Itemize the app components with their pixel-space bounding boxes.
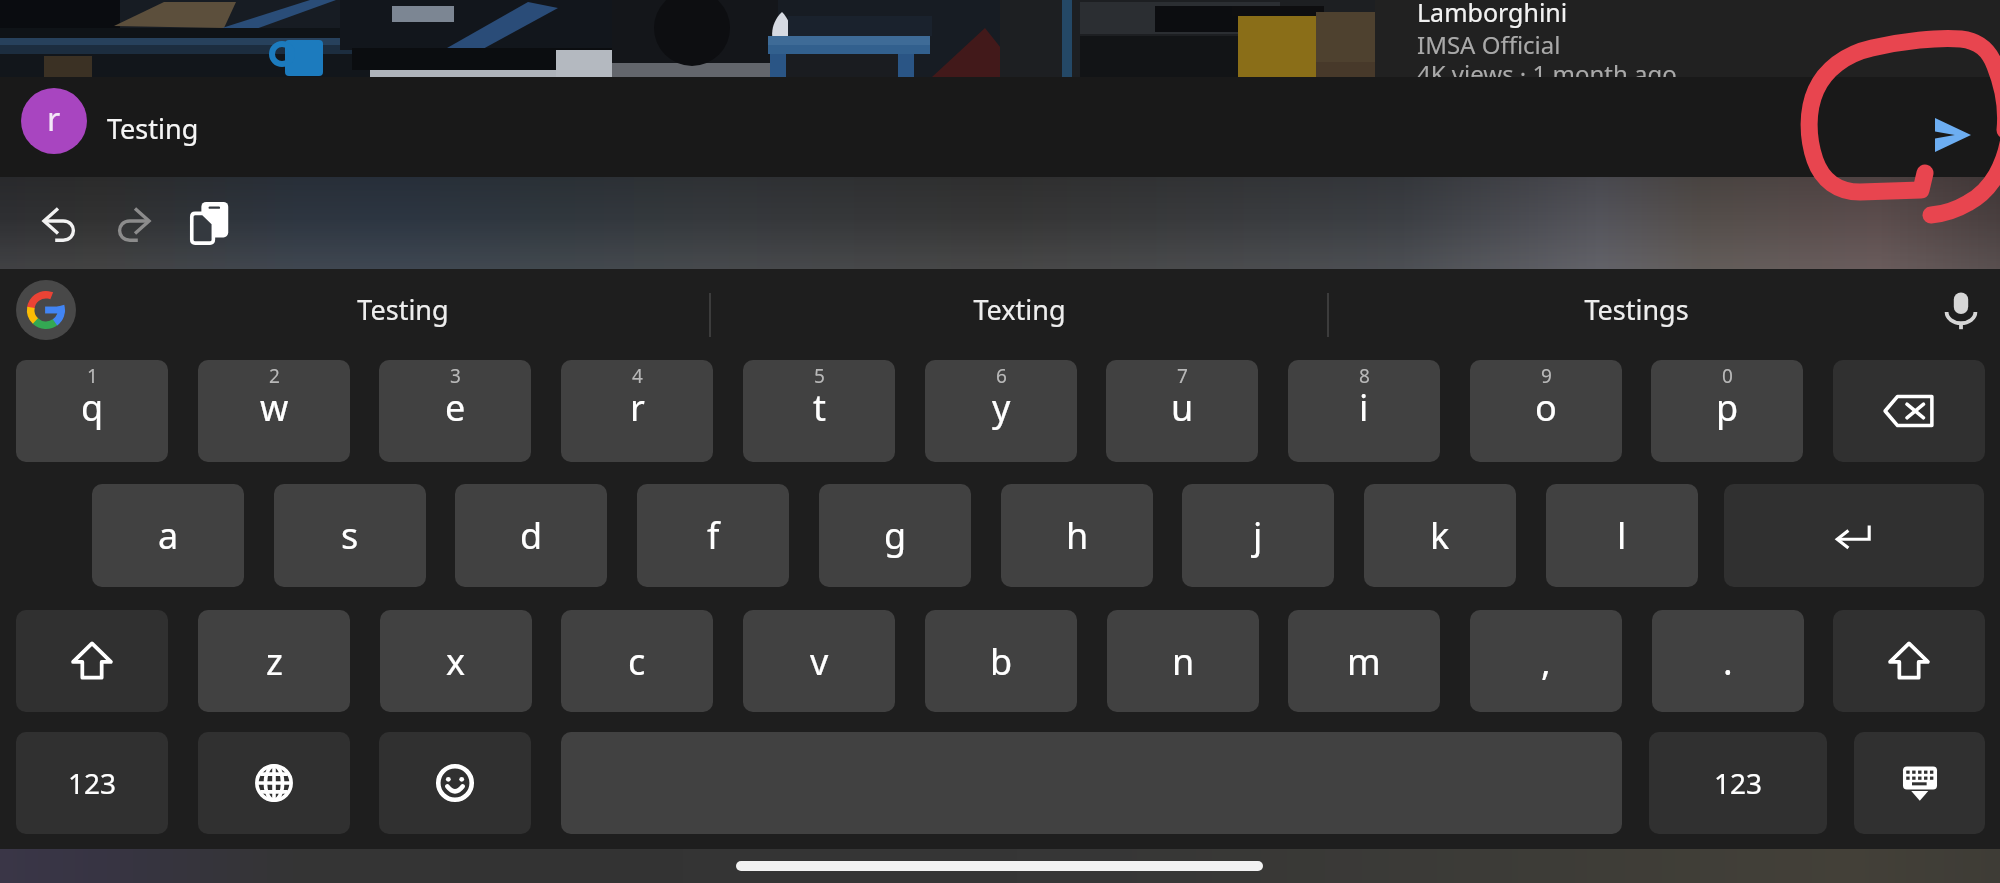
button[interactable]: z	[198, 610, 350, 712]
staticText: e	[445, 383, 466, 432]
staticText: 9	[1541, 363, 1552, 389]
button[interactable]: 123	[16, 732, 168, 834]
staticText: b	[990, 637, 1013, 686]
button[interactable]: Shift	[1833, 610, 1985, 712]
staticText: 5	[814, 363, 825, 389]
staticText: 8	[1359, 363, 1370, 389]
staticText: u	[1171, 383, 1194, 432]
button[interactable]: Clipboard	[176, 189, 244, 257]
staticText: 4K views · 1 month ago	[1417, 57, 1677, 90]
button[interactable]: n	[1107, 610, 1259, 712]
button[interactable]: 0	[1651, 360, 1803, 462]
staticText: m	[1347, 637, 1381, 686]
button[interactable]: 9	[1470, 360, 1622, 462]
staticText: 1	[87, 363, 98, 389]
staticText: 0	[1722, 363, 1733, 389]
button[interactable]: Backspace	[1833, 360, 1985, 462]
staticText: IMSA Official	[1417, 28, 1561, 61]
button[interactable]: s	[274, 484, 426, 587]
button[interactable]: 3	[379, 360, 531, 462]
button[interactable]: Change language	[198, 732, 350, 834]
button[interactable]: j	[1182, 484, 1334, 587]
staticText: o	[1535, 383, 1557, 432]
staticText: f	[707, 511, 720, 560]
staticText: j	[1253, 511, 1263, 560]
staticText: 4	[632, 363, 643, 389]
button[interactable]: Shift	[16, 610, 168, 712]
button[interactable]: Emoji	[379, 732, 531, 834]
staticText: r	[47, 97, 61, 141]
button[interactable]: 5	[743, 360, 895, 462]
button[interactable]: Testings	[1328, 269, 1945, 360]
button[interactable]: 123	[1649, 732, 1827, 834]
staticText: c	[628, 637, 646, 686]
button[interactable]: x	[380, 610, 532, 712]
button[interactable]: k	[1364, 484, 1516, 587]
button[interactable]: ,	[1470, 610, 1622, 712]
staticText: 2	[269, 363, 280, 389]
staticText: g	[884, 511, 907, 560]
button[interactable]: g	[819, 484, 971, 587]
staticText: Lamborghini	[1417, 0, 1568, 29]
staticText: Testings	[1584, 291, 1689, 328]
button[interactable]: 2	[198, 360, 350, 462]
button[interactable]: r	[0, 77, 2000, 177]
staticText: .	[1723, 637, 1733, 686]
staticText: s	[341, 511, 359, 560]
staticText: x	[446, 637, 466, 686]
button[interactable]: b	[925, 610, 1077, 712]
staticText: a	[158, 511, 179, 560]
staticText: 123	[68, 764, 117, 802]
button[interactable]: m	[1288, 610, 1440, 712]
button[interactable]: f	[637, 484, 789, 587]
button[interactable]: 7	[1106, 360, 1258, 462]
staticText: i	[1359, 383, 1369, 432]
staticText: ,	[1541, 637, 1551, 686]
staticText: z	[266, 637, 283, 686]
button[interactable]: 8	[1288, 360, 1440, 462]
button[interactable]: v	[743, 610, 895, 712]
button[interactable]: 1	[16, 360, 168, 462]
staticText: q	[81, 383, 104, 432]
button[interactable]: h	[1001, 484, 1153, 587]
button[interactable]: Undo	[26, 189, 94, 257]
staticText: l	[1617, 511, 1627, 560]
staticText: 3	[450, 363, 461, 389]
button[interactable]: Redo	[99, 189, 167, 257]
button[interactable]: Texting	[711, 269, 1328, 360]
button[interactable]: .	[1652, 610, 1804, 712]
staticText: p	[1716, 383, 1739, 432]
staticText: n	[1172, 637, 1195, 686]
button[interactable]: d	[455, 484, 607, 587]
staticText: 123	[1714, 764, 1763, 802]
staticText: 7	[1177, 363, 1188, 389]
button[interactable]: Hide keyboard	[1854, 732, 1985, 834]
staticText: Texting	[973, 291, 1066, 328]
staticText: t	[813, 383, 826, 432]
button[interactable]: Enter	[1724, 484, 1984, 587]
staticText: v	[810, 637, 829, 686]
staticText: d	[520, 511, 543, 560]
button[interactable]: Send	[1923, 105, 1983, 165]
staticText: 6	[996, 363, 1007, 389]
button[interactable]: Voice input	[1931, 280, 1991, 340]
button[interactable]: Google	[16, 280, 76, 340]
button[interactable]: c	[561, 610, 713, 712]
staticText: r	[630, 383, 645, 432]
button[interactable]: Testing	[94, 269, 711, 360]
button[interactable]: a	[92, 484, 244, 587]
staticText: k	[1430, 511, 1450, 560]
staticText: w	[260, 383, 289, 432]
staticText: Testing	[357, 291, 449, 328]
button[interactable]: l	[1546, 484, 1698, 587]
button[interactable]: 4	[561, 360, 713, 462]
staticText: y	[992, 383, 1011, 432]
button[interactable]: 6	[925, 360, 1077, 462]
staticText: Testing	[107, 110, 199, 147]
staticText: h	[1066, 511, 1089, 560]
